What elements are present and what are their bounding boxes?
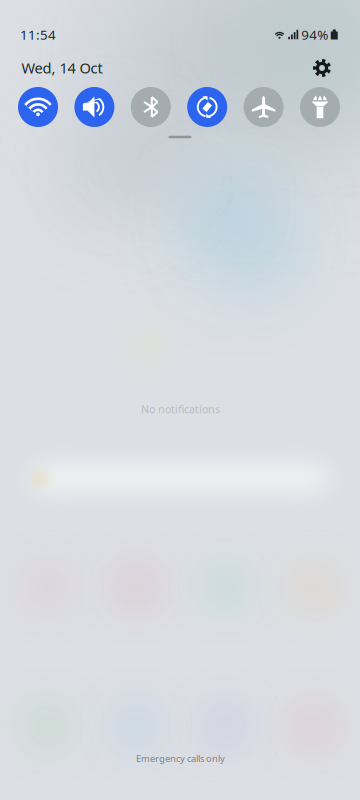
button[interactable]: Wi-Fi (18, 87, 58, 127)
staticText: Wed, 14 Oct (22, 58, 103, 78)
staticText: No notifications (141, 402, 220, 416)
button[interactable]: Flashlight (300, 87, 340, 127)
staticText: 11:54 (20, 26, 56, 43)
button[interactable]: Auto rotate (187, 87, 227, 127)
button[interactable]: Settings (305, 51, 339, 85)
button[interactable]: Airplane mode (244, 87, 284, 127)
staticText: Emergency calls only (136, 752, 225, 764)
button[interactable]: Bluetooth (131, 87, 171, 127)
staticText: 94% (301, 26, 328, 43)
button[interactable]: Sound (74, 87, 114, 127)
